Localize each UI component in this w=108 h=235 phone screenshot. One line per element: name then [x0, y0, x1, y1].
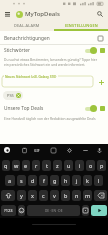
button[interactable]: e — [22, 160, 30, 171]
staticText: p — [100, 162, 104, 169]
staticText: w — [14, 162, 19, 169]
staticText: c — [42, 192, 45, 199]
button[interactable]: Emoji — [18, 205, 25, 216]
staticText: z — [56, 162, 59, 169]
button[interactable]: f — [39, 175, 48, 186]
button[interactable]: v — [50, 190, 59, 201]
staticText: DEAL-ALARM — [14, 23, 40, 28]
staticText: Stichwörter — [4, 47, 30, 54]
button[interactable]: Unsere Top Deals — [4, 102, 105, 114]
staticText: f — [43, 177, 45, 184]
staticText: MyTopDeals — [25, 10, 60, 18]
button[interactable]: PS5 — [3, 91, 23, 100]
button[interactable]: Space — [27, 205, 80, 216]
button[interactable]: w — [12, 160, 20, 171]
staticText: s — [20, 177, 23, 184]
button[interactable]: Voice input — [95, 146, 103, 154]
button[interactable]: Sticker — [49, 146, 57, 154]
button[interactable]: Info — [96, 34, 105, 43]
button[interactable]: Search — [93, 7, 107, 21]
button[interactable]: Menu — [1, 8, 13, 20]
staticText: Eine Handvoll täglich von der Redaktion … — [4, 116, 96, 120]
staticText: b — [64, 192, 68, 199]
button[interactable]: h — [61, 175, 70, 186]
button[interactable]: d — [28, 175, 37, 186]
button[interactable]: Google — [4, 147, 10, 153]
staticText: v — [53, 192, 56, 199]
staticText: q — [4, 162, 8, 169]
staticText: o — [89, 162, 93, 169]
button[interactable]: u — [64, 160, 73, 171]
staticText: e — [24, 162, 28, 169]
staticText: Du suchst etwas Bestimmtes, besonders gü… — [4, 57, 98, 67]
button[interactable]: Period — [82, 205, 89, 216]
button[interactable]: g — [50, 175, 59, 186]
button[interactable]: EINSTELLUNGEN — [54, 21, 108, 29]
button[interactable]: a — [5, 175, 15, 186]
staticText: Neues Stichwort (z.B. Galaxy S10) — [5, 74, 57, 78]
staticText: ?123 — [4, 208, 13, 213]
button[interactable]: Add keyword — [96, 77, 106, 87]
staticText: DE · EN · DE — [45, 209, 63, 213]
button[interactable]: b — [61, 190, 70, 201]
staticText: t — [46, 162, 48, 169]
staticText: Unsere Top Deals — [4, 105, 44, 112]
button[interactable]: l — [94, 175, 103, 186]
staticText: x — [31, 192, 34, 199]
staticText: j — [76, 177, 78, 184]
button[interactable]: Settings — [65, 146, 73, 154]
staticText: n — [75, 192, 79, 199]
button[interactable]: j — [72, 175, 81, 186]
staticText: y — [20, 192, 23, 199]
button[interactable]: t — [42, 160, 51, 171]
button[interactable]: GIF — [32, 148, 41, 153]
staticText: EINSTELLUNGEN — [65, 23, 98, 28]
button[interactable]: m — [83, 190, 92, 201]
staticText: a — [8, 177, 12, 184]
staticText: g — [53, 177, 57, 184]
button[interactable]: c — [39, 190, 48, 201]
button[interactable]: Enter — [91, 205, 107, 216]
button[interactable]: Shift — [1, 190, 15, 201]
button[interactable]: Backspace — [94, 190, 107, 201]
staticText: m — [85, 192, 91, 199]
button[interactable]: z — [53, 160, 62, 171]
button[interactable]: p — [97, 160, 106, 171]
staticText: Benachrichtigungen — [4, 35, 50, 42]
button[interactable]: o — [86, 160, 95, 171]
staticText: k — [86, 177, 89, 184]
button[interactable]: r — [32, 160, 40, 171]
button[interactable]: Clipboard — [20, 146, 28, 154]
staticText: l — [98, 177, 100, 184]
button[interactable]: More — [81, 146, 89, 154]
button[interactable]: Stichwörter — [4, 44, 105, 56]
button[interactable]: q — [2, 160, 10, 171]
staticText: GIF — [34, 148, 40, 153]
button[interactable]: x — [28, 190, 37, 201]
staticText: r — [35, 162, 38, 169]
button[interactable]: n — [72, 190, 81, 201]
button[interactable]: Symbols — [1, 205, 16, 216]
staticText: h — [64, 177, 68, 184]
button[interactable]: s — [17, 175, 26, 186]
button[interactable]: i — [75, 160, 84, 171]
staticText: d — [31, 177, 35, 184]
staticText: PS5 — [7, 93, 14, 98]
staticText: i — [79, 162, 81, 169]
button[interactable]: DEAL-ALARM — [0, 21, 54, 29]
button[interactable]: y — [17, 190, 26, 201]
button[interactable]: k — [83, 175, 92, 186]
staticText: u — [67, 162, 71, 169]
